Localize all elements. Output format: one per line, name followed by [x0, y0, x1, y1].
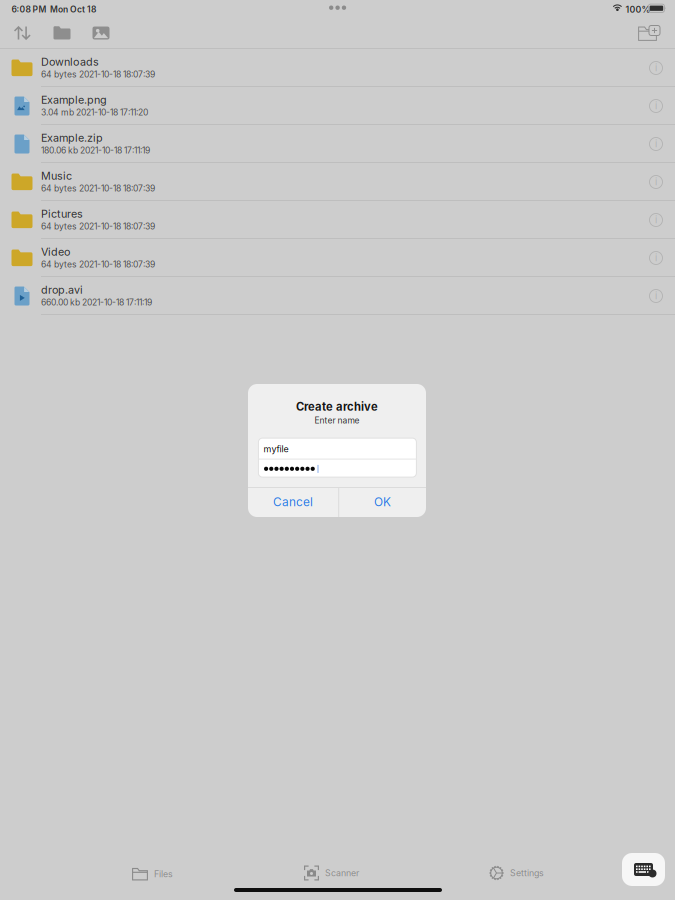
staticText: i	[655, 100, 657, 111]
staticText: Example.png	[41, 93, 107, 106]
staticText: Mon Oct 18	[50, 4, 96, 14]
staticText: Files	[154, 869, 173, 879]
button[interactable]: Music	[0, 163, 675, 201]
staticText: drop.avi	[41, 283, 83, 296]
staticText: Music	[41, 169, 72, 182]
staticText: Cancel	[273, 495, 313, 509]
staticText: 64 bytes 2021-10-18 18:07:39	[41, 69, 155, 80]
button[interactable]: Video	[0, 239, 675, 277]
staticText: i	[655, 252, 657, 263]
staticText: Video	[41, 245, 70, 258]
staticText: Settings	[510, 868, 544, 878]
staticText: 64 bytes 2021-10-18 18:07:39	[41, 221, 155, 232]
button[interactable]: Folders	[43, 18, 81, 48]
button[interactable]: Settings	[489, 858, 609, 888]
staticText: 100%	[625, 4, 650, 15]
button[interactable]: Example.zip	[0, 125, 675, 163]
staticText: myfile	[264, 444, 289, 454]
button[interactable]: Cancel	[248, 487, 338, 517]
button[interactable]: Sort	[4, 18, 42, 48]
staticText: Enter name	[314, 415, 359, 425]
staticText: 3.04 mb 2021-10-18 17:11:20	[41, 107, 148, 118]
button[interactable]: Scanner	[304, 858, 424, 888]
staticText: 180.06 kb 2021-10-18 17:11:19	[41, 145, 150, 156]
staticText: i	[655, 176, 657, 187]
button[interactable]: Downloads	[0, 49, 675, 87]
button[interactable]: Keyboard	[622, 853, 665, 886]
button[interactable]: New folder	[630, 18, 668, 48]
button[interactable]: Photos	[82, 18, 120, 48]
staticText: 660.00 kb 2021-10-18 17:11:19	[41, 297, 152, 308]
staticText: Example.zip	[41, 131, 103, 144]
staticText: Create archive	[296, 400, 378, 413]
staticText: i	[655, 138, 657, 149]
staticText: i	[655, 62, 657, 73]
staticText: Downloads	[41, 55, 99, 68]
button[interactable]: Files	[132, 859, 252, 889]
staticText: OK	[374, 495, 391, 509]
staticText: 6:08 PM	[11, 4, 46, 14]
staticText: i	[655, 214, 657, 225]
button[interactable]: Example.png	[0, 87, 675, 125]
staticText: i	[655, 290, 657, 301]
staticText: Scanner	[325, 868, 359, 878]
staticText: 64 bytes 2021-10-18 18:07:39	[41, 259, 155, 270]
staticText: Pictures	[41, 207, 83, 220]
staticText: 64 bytes 2021-10-18 18:07:39	[41, 183, 155, 194]
button[interactable]: OK	[339, 487, 426, 517]
button[interactable]: drop.avi	[0, 277, 675, 315]
button[interactable]: Pictures	[0, 201, 675, 239]
